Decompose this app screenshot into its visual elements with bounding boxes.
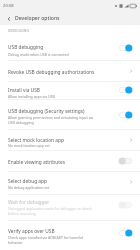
staticText: Verify apps over USB (8, 228, 55, 235)
staticText: Allow installing apps via USB (8, 94, 55, 99)
staticText: Select mock location app (8, 137, 64, 144)
staticText: USB debugging (8, 44, 44, 51)
staticText: USB debugging (Security settings) (8, 108, 85, 115)
staticText: Debugged application waits for debugger … (8, 206, 93, 216)
staticText: Revoke USB debugging authorizations (8, 69, 95, 76)
staticText: No mock location app set (8, 143, 50, 148)
staticText: Enable viewing attributes (8, 159, 65, 166)
staticText: No debug application set (8, 185, 50, 190)
staticText: Select debug app (8, 178, 47, 185)
button[interactable] (0, 194, 140, 220)
staticText: Developer options (15, 15, 60, 22)
staticText: Wait for debugger (8, 199, 50, 206)
button[interactable] (0, 81, 140, 99)
button[interactable] (0, 171, 140, 194)
staticText: 20:08 (3, 3, 14, 9)
staticText: Check apps installed via ADB/ADT for har… (8, 235, 83, 245)
staticText: DEBUGGING (8, 28, 29, 32)
staticText: Debug mode when USB is connected (8, 52, 69, 57)
button[interactable]: Back (2, 12, 15, 25)
button[interactable] (0, 129, 140, 150)
button[interactable] (0, 99, 140, 130)
button[interactable] (0, 25, 140, 60)
staticText: Allow granting permissions and simulatin… (8, 115, 94, 125)
button[interactable] (0, 220, 140, 250)
button[interactable] (0, 60, 140, 81)
button[interactable] (0, 150, 140, 171)
staticText: Install via USB (8, 87, 40, 94)
